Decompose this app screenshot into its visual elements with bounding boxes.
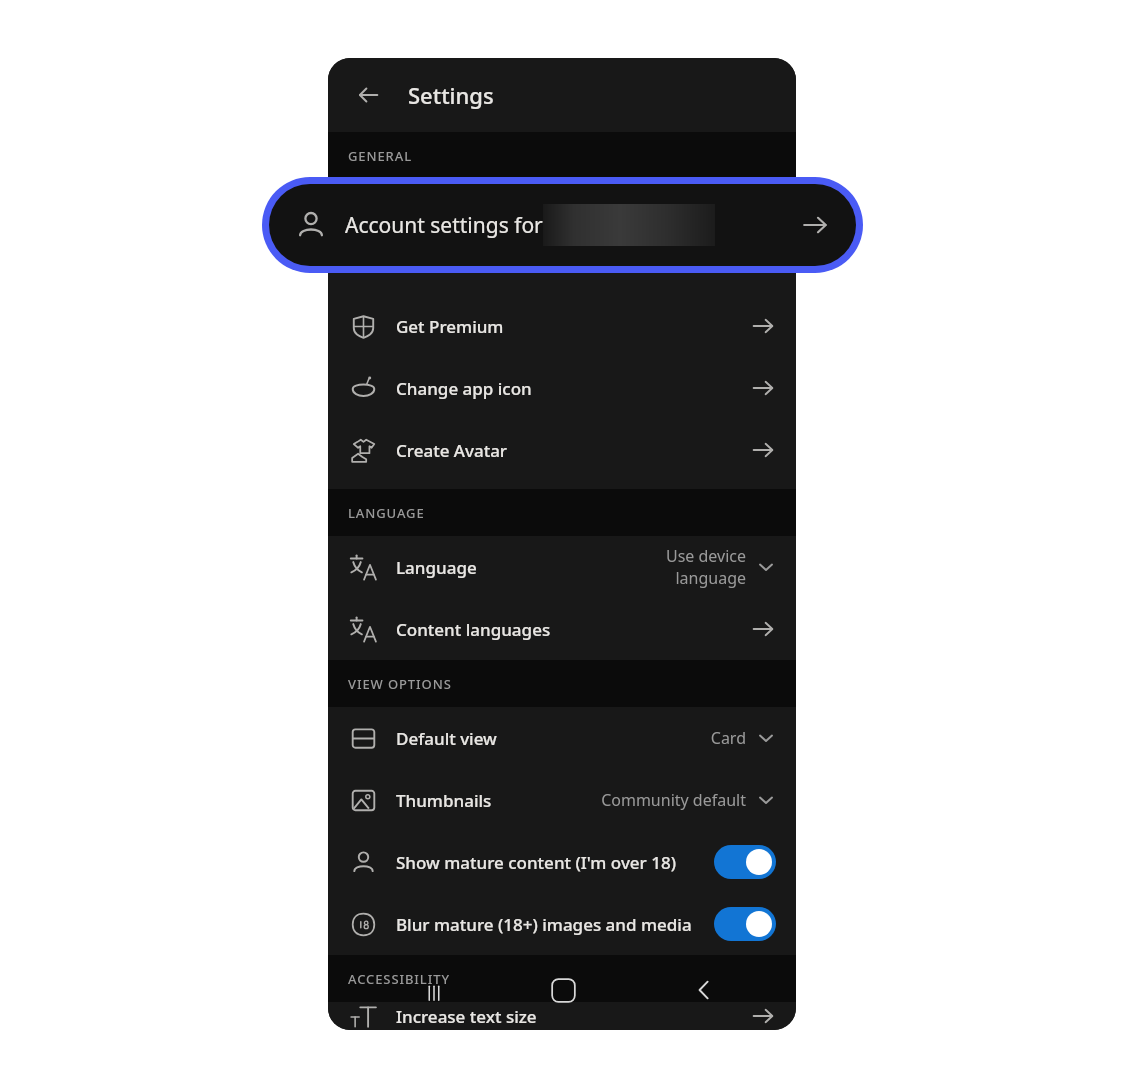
button[interactable]: Get Premium — [328, 295, 796, 357]
button[interactable]: Home — [542, 969, 584, 1011]
button[interactable]: Recent apps — [414, 974, 454, 1014]
staticText: Get Premium — [396, 315, 504, 338]
staticText: VIEW OPTIONS — [348, 675, 452, 693]
staticText: GENERAL — [348, 147, 412, 165]
button[interactable]: Create Avatar — [328, 419, 796, 481]
button[interactable]: Content languages — [328, 598, 796, 660]
staticText: language — [675, 567, 746, 589]
button[interactable]: Default view — [328, 707, 796, 769]
button[interactable] — [328, 179, 796, 273]
staticText: Language — [396, 556, 477, 579]
staticText: Show mature content (I'm over 18) — [396, 851, 676, 874]
button[interactable] — [714, 907, 776, 941]
button[interactable]: Back — [684, 970, 724, 1010]
staticText: Change app icon — [396, 377, 532, 400]
staticText: Card — [710, 727, 746, 749]
staticText: Default view — [396, 727, 497, 750]
button[interactable]: Show mature content (I'm over 18) — [328, 831, 796, 893]
button[interactable]: Increase text size — [328, 1002, 796, 1030]
button[interactable] — [714, 845, 776, 879]
staticText: Account settings for — [345, 211, 543, 240]
staticText: Increase text size — [396, 1005, 537, 1028]
staticText: Create Avatar — [396, 439, 508, 462]
button[interactable]: Thumbnails — [328, 769, 796, 831]
button[interactable]: Back — [346, 72, 392, 118]
staticText: Community default — [601, 789, 746, 811]
staticText: Blur mature (18+) images and media — [396, 913, 692, 936]
staticText: Use device — [665, 545, 746, 567]
staticText: Thumbnails — [396, 789, 492, 812]
button[interactable]: Change app icon — [328, 357, 796, 419]
staticText: ACCESSIBILITY — [348, 970, 450, 988]
button[interactable]: Blur mature (18+) images and media — [328, 893, 796, 955]
button[interactable]: Language — [328, 536, 796, 598]
button[interactable]: Account settings for — [269, 184, 856, 266]
staticText: LANGUAGE — [348, 504, 425, 522]
staticText: Content languages — [396, 618, 551, 641]
staticText: Settings — [408, 80, 494, 110]
